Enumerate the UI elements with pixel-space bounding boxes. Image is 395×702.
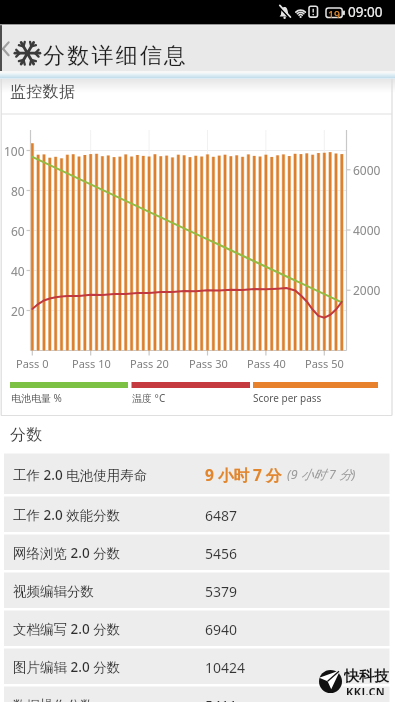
staticText: 文档编写 2.0 分数	[13, 620, 121, 638]
staticText: 温度 °C	[132, 391, 166, 405]
staticText: 5379	[205, 582, 238, 601]
staticText: Pass 40	[247, 356, 286, 371]
button[interactable]	[4, 573, 390, 609]
staticText: Pass 0	[16, 356, 49, 371]
staticText: 6487	[205, 506, 238, 525]
staticText: 6000	[353, 162, 381, 178]
staticText: Pass 20	[130, 356, 169, 371]
staticText: 5411	[205, 696, 238, 702]
button[interactable]	[4, 611, 390, 647]
staticText: 09:00	[348, 3, 383, 21]
staticText: 网络浏览 2.0 分数	[13, 544, 121, 562]
button[interactable]	[4, 687, 390, 702]
button[interactable]	[4, 535, 390, 571]
staticText: 分数详细信息	[43, 42, 189, 67]
staticText: 80	[11, 183, 25, 199]
staticText: 10424	[205, 658, 246, 677]
button[interactable]	[4, 649, 390, 685]
staticText: 4000	[353, 222, 381, 238]
button[interactable]	[4, 454, 390, 495]
staticText: 100	[4, 143, 25, 159]
staticText: (9 小时 7 分)	[287, 466, 356, 483]
staticText: KKJ.CN	[346, 684, 386, 695]
staticText: 40	[11, 263, 25, 279]
staticText: Pass 10	[72, 356, 111, 371]
staticText: 视频编辑分数	[13, 583, 94, 600]
staticText: 19	[328, 8, 341, 18]
staticText: 快科技	[344, 667, 389, 685]
staticText: 数据操作分数	[13, 697, 94, 702]
staticText: 5456	[205, 544, 238, 563]
staticText: 分数	[10, 425, 43, 445]
staticText: 6940	[205, 620, 238, 639]
staticText: Pass 30	[189, 356, 228, 371]
staticText: Pass 50	[305, 356, 344, 371]
staticText: 20	[11, 303, 25, 319]
staticText: 9 小时 7 分	[205, 464, 282, 485]
button[interactable]	[0, 25, 220, 71]
staticText: 监控数据	[10, 82, 76, 102]
staticText: 图片编辑 2.0 分数	[13, 658, 121, 676]
staticText: 2000	[353, 282, 381, 298]
button[interactable]	[4, 497, 390, 533]
staticText: Score per pass	[253, 391, 322, 405]
staticText: 60	[11, 223, 25, 239]
staticText: 工作 2.0 电池使用寿命	[13, 466, 148, 484]
staticText: 工作 2.0 效能分数	[13, 506, 121, 524]
staticText: 电池电量 %	[11, 391, 62, 405]
